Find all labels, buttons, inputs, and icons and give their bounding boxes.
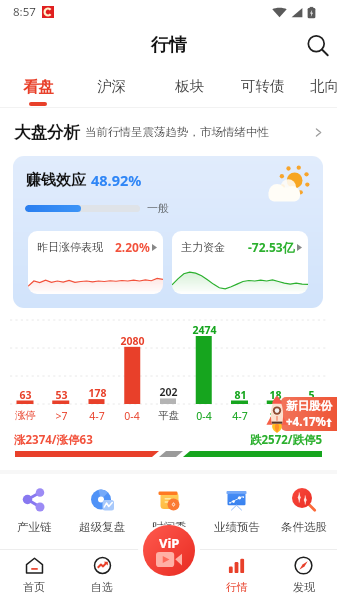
staticText: 4-7 — [232, 409, 248, 423]
staticText: 行情 — [151, 34, 187, 57]
button[interactable]: 板块 — [165, 67, 214, 99]
staticText: 平盘 — [158, 409, 179, 422]
button[interactable]: VIP video — [143, 525, 195, 576]
staticText: 2.20% — [115, 239, 150, 255]
button[interactable]: 产业链 — [0, 474, 68, 546]
button[interactable]: 业绩预告 — [203, 474, 270, 546]
staticText: 8:57 — [13, 4, 36, 20]
button[interactable]: Search — [303, 31, 333, 61]
staticText: 看盘 — [23, 77, 54, 97]
button[interactable]: 发现 — [270, 549, 337, 600]
staticText: 板块 — [175, 77, 204, 95]
staticText: 行情 — [226, 580, 248, 594]
staticText: 沪深 — [97, 77, 126, 95]
staticText: 跌2572/跌停5 — [250, 432, 323, 448]
button[interactable]: 行情 — [203, 549, 270, 600]
staticText: 首页 — [23, 580, 45, 594]
staticText: 5 — [308, 388, 315, 402]
staticText: 涨2374/涨停63 — [14, 432, 93, 448]
staticText: 涨停 — [15, 409, 36, 422]
button[interactable]: 主力资金 — [172, 231, 308, 294]
staticText: 2080 — [120, 334, 145, 348]
staticText: 202 — [159, 385, 178, 399]
staticText: 北向 — [310, 77, 337, 95]
staticText: 发现 — [293, 580, 315, 594]
button[interactable]: 首页 — [0, 549, 68, 600]
button[interactable]: 条件选股 — [270, 474, 337, 546]
staticText: +4.17% — [286, 414, 326, 430]
staticText: 53 — [55, 388, 68, 402]
staticText: 0-4 — [196, 409, 212, 423]
staticText: 主力资金 — [181, 240, 225, 254]
staticText: 新日股份 — [286, 399, 332, 413]
staticText: 跌停 — [301, 409, 322, 422]
staticText: 昨日涨停表现 — [37, 240, 103, 254]
staticText: 2474 — [192, 323, 217, 337]
button[interactable]: 大盘分析 — [14, 108, 325, 156]
staticText: 81 — [234, 388, 247, 402]
staticText: 4-7 — [89, 409, 105, 423]
staticText: 业绩预告 — [214, 520, 260, 534]
staticText: >7 — [269, 409, 282, 423]
button[interactable]: 超级复盘 — [68, 474, 136, 546]
staticText: 48.92% — [91, 170, 142, 190]
button[interactable]: 赚钱效应 — [13, 156, 323, 308]
button[interactable]: 新日股份 — [281, 397, 337, 431]
staticText: -72.53亿 — [248, 239, 295, 255]
staticText: 当前行情呈震荡趋势，市场情绪中性 — [85, 125, 269, 139]
button[interactable]: 昨日涨停表现 — [28, 231, 163, 294]
staticText: 超级复盘 — [79, 520, 125, 534]
staticText: 产业链 — [17, 520, 52, 534]
staticText: 178 — [88, 386, 107, 400]
button[interactable]: 可转债 — [231, 67, 294, 99]
button[interactable]: 自选 — [68, 549, 136, 600]
staticText: 时间秀 — [152, 520, 187, 534]
staticText: 18 — [269, 388, 282, 402]
staticText: 自选 — [91, 580, 113, 594]
staticText: ViP — [159, 534, 180, 552]
staticText: >7 — [55, 409, 68, 423]
staticText: 可转债 — [241, 77, 285, 95]
staticText: 0-4 — [124, 409, 140, 423]
staticText: 条件选股 — [281, 520, 327, 534]
staticText: 一般 — [147, 201, 169, 215]
staticText: 大盘分析 — [14, 122, 80, 143]
button[interactable]: 沪深 — [87, 67, 136, 99]
button[interactable]: 时间秀 — [136, 474, 203, 546]
staticText: 63 — [19, 388, 32, 402]
button[interactable]: 北向 — [300, 67, 337, 99]
staticText: 赚钱效应 — [26, 171, 86, 190]
button[interactable]: 看盘 — [12, 67, 64, 99]
